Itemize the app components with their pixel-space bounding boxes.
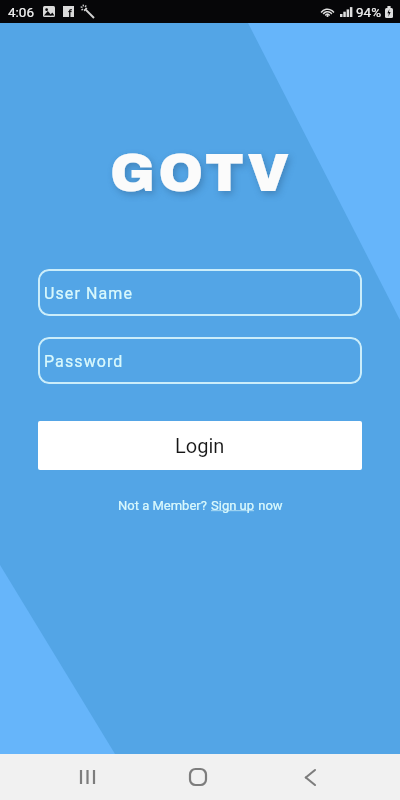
- staticText: 4:06: [8, 4, 35, 20]
- button[interactable]: Login: [38, 421, 362, 470]
- button[interactable]: Home: [174, 754, 222, 800]
- staticText: GOTV: [110, 144, 293, 203]
- button[interactable]: Back: [286, 754, 334, 800]
- staticText: User Name: [44, 284, 134, 303]
- staticText: now: [255, 498, 283, 513]
- button[interactable]: Recent apps: [63, 754, 111, 800]
- staticText: f: [68, 7, 72, 18]
- staticText: 94%: [356, 4, 382, 20]
- staticText: Password: [44, 352, 124, 371]
- staticText: Not a Member?: [118, 498, 211, 513]
- button[interactable]: Sign up: [211, 498, 255, 513]
- button[interactable]: Password: [38, 337, 362, 384]
- button[interactable]: User Name: [38, 269, 362, 316]
- staticText: Login: [175, 434, 225, 457]
